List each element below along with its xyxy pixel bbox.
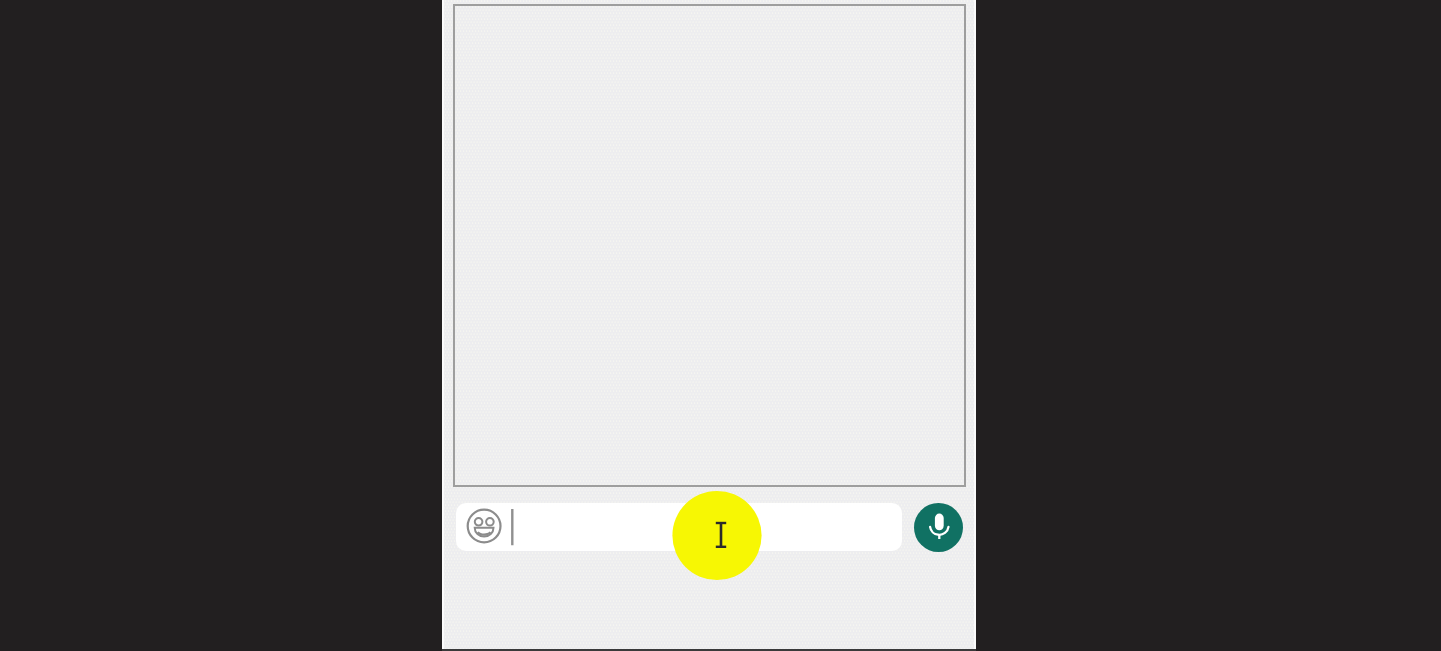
button[interactable] [456, 503, 902, 551]
button[interactable] [914, 503, 963, 552]
